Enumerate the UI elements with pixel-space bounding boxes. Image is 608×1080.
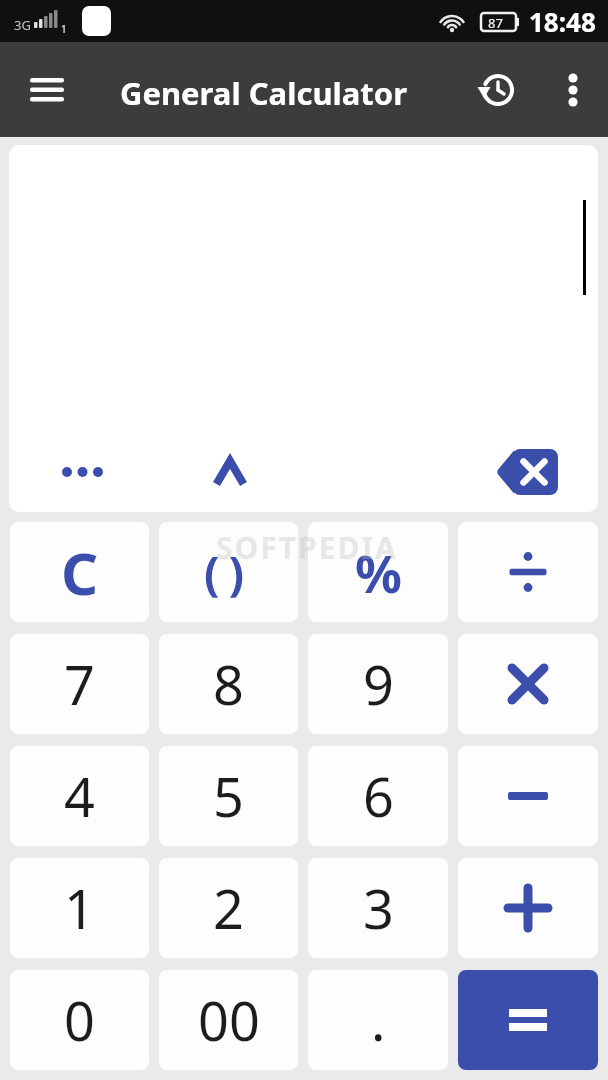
button[interactable]: 7: [10, 634, 149, 734]
button[interactable]: 6: [308, 746, 448, 846]
button[interactable]: 8: [159, 634, 298, 734]
staticText: 3: [363, 871, 394, 945]
button[interactable]: 5: [159, 746, 298, 846]
staticText: 4: [64, 759, 95, 833]
button[interactable]: [458, 746, 598, 846]
staticText: (): [204, 541, 254, 604]
button[interactable]: 00: [159, 970, 298, 1070]
staticText: C: [61, 533, 99, 612]
staticText: 7: [64, 647, 95, 721]
button[interactable]: 4: [10, 746, 149, 846]
button[interactable]: [196, 445, 264, 499]
staticText: %: [355, 537, 402, 608]
staticText: 87: [488, 14, 503, 32]
staticText: 1: [61, 22, 67, 36]
staticText: 00: [198, 983, 260, 1057]
staticText: 0: [64, 983, 95, 1057]
button[interactable]: .: [308, 970, 448, 1070]
button[interactable]: [553, 66, 593, 114]
staticText: 2: [213, 871, 244, 945]
button[interactable]: 2: [159, 858, 298, 958]
staticText: 18:48: [529, 4, 596, 39]
staticText: 3G: [14, 16, 31, 34]
button[interactable]: 1: [10, 858, 149, 958]
button[interactable]: [458, 522, 598, 622]
staticText: 5: [213, 759, 244, 833]
button[interactable]: [18, 72, 76, 108]
button[interactable]: 3: [308, 858, 448, 958]
button[interactable]: 0: [10, 970, 149, 1070]
button[interactable]: [458, 858, 598, 958]
staticText: General Calculator: [120, 72, 408, 114]
staticText: 1: [64, 871, 95, 945]
button[interactable]: (): [159, 522, 298, 622]
button[interactable]: C: [10, 522, 149, 622]
staticText: 9: [363, 647, 394, 721]
staticText: 8: [213, 647, 244, 721]
staticText: 6: [363, 759, 394, 833]
button[interactable]: [458, 634, 598, 734]
button[interactable]: %: [308, 522, 448, 622]
button[interactable]: [458, 970, 598, 1070]
button[interactable]: [473, 66, 521, 114]
button[interactable]: [53, 445, 117, 499]
staticText: SOFTPEDIA: [216, 527, 398, 568]
button[interactable]: 9: [308, 634, 448, 734]
button[interactable]: [481, 441, 573, 503]
staticText: .: [371, 983, 386, 1057]
